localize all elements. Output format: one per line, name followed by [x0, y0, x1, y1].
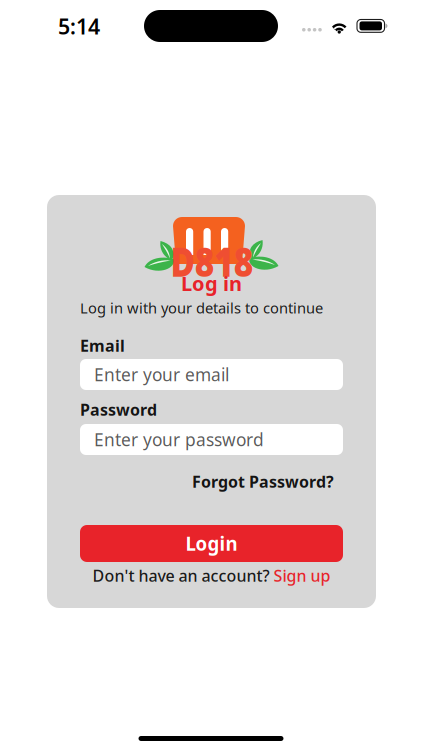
staticText: Log in with your details to continue	[80, 298, 323, 317]
button[interactable]: Sign up	[273, 565, 330, 586]
button[interactable]: Enter your email	[80, 359, 343, 390]
staticText: Password	[80, 399, 157, 420]
staticText: Email	[80, 335, 125, 356]
button[interactable]: Enter your password	[80, 424, 343, 455]
staticText: Login	[185, 531, 237, 556]
staticText: 5:14	[58, 12, 100, 40]
staticText: Forgot Password?	[192, 471, 334, 492]
staticText: Don't have an account?	[92, 565, 273, 586]
staticText: Sign up	[273, 565, 330, 586]
staticText: D818	[170, 234, 276, 291]
button[interactable]: Forgot Password?	[192, 471, 334, 492]
staticText: Log in	[181, 270, 242, 297]
button[interactable]: Login	[80, 525, 343, 562]
staticText: Enter your password	[94, 428, 264, 451]
staticText: Enter your email	[94, 363, 229, 386]
